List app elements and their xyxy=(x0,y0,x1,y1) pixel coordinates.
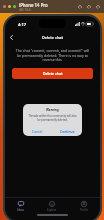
staticText: Explore xyxy=(47,208,57,212)
button[interactable]: Close window xyxy=(3,5,6,8)
button[interactable]: Back xyxy=(7,33,16,42)
staticText: Profile xyxy=(80,208,88,212)
staticText: Threads within this community will also … xyxy=(27,114,78,122)
button[interactable]: Minimize window xyxy=(8,5,11,8)
button[interactable]: Explore xyxy=(36,198,68,214)
staticText: Inbox xyxy=(17,208,24,212)
staticText: iPhone 14 Pro xyxy=(19,2,48,8)
button[interactable]: Rotate left xyxy=(77,4,83,10)
staticText: iOS 16.4 xyxy=(19,8,31,12)
button[interactable]: Rotate right xyxy=(95,4,101,10)
button[interactable]: Inbox xyxy=(5,198,36,214)
staticText: Delete chat xyxy=(43,71,63,76)
button[interactable]: Continue xyxy=(52,125,82,136)
staticText: Cancel xyxy=(32,129,43,133)
staticText: Delete chat xyxy=(42,35,64,40)
button[interactable]: Maximize window xyxy=(13,5,16,8)
staticText: The chat "commit, commit, and commit!" w… xyxy=(14,48,91,62)
staticText: 4:17 xyxy=(18,22,26,27)
button[interactable]: Cancel xyxy=(23,125,52,136)
button[interactable]: Profile xyxy=(68,198,100,214)
button[interactable]: Home xyxy=(86,4,92,10)
staticText: Warning xyxy=(46,108,59,112)
staticText: Continue xyxy=(60,129,75,133)
button[interactable]: Delete chat xyxy=(12,68,93,79)
